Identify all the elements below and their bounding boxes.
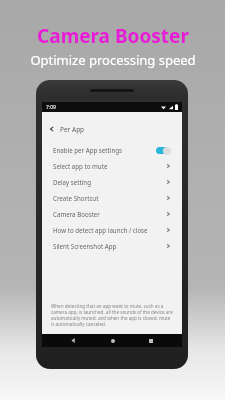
button[interactable]: Back: [67, 334, 80, 347]
staticText: Create Shortcut: [53, 194, 165, 202]
button[interactable]: Recent apps: [144, 334, 157, 347]
button[interactable]: Create Shortcut: [42, 190, 182, 206]
button[interactable]: Home: [106, 334, 119, 347]
staticText: Optimize processing speed: [30, 51, 196, 69]
staticText: Silent Screenshot App: [53, 242, 165, 250]
button[interactable]: Enable per App settings: [42, 142, 182, 158]
staticText: Camera Booster: [37, 23, 189, 49]
button[interactable]: Camera Booster: [42, 206, 182, 222]
button[interactable]: Delay setting: [42, 174, 182, 190]
other: Back: [49, 126, 55, 132]
button[interactable]: Silent Screenshot App: [42, 238, 182, 254]
staticText: Enable per App settings: [53, 146, 156, 154]
staticText: 7:09: [46, 104, 56, 111]
button[interactable]: Select app to mute: [42, 158, 182, 174]
staticText: Per App: [60, 125, 85, 134]
button[interactable]: Back: [42, 122, 182, 136]
staticText: Delay setting: [53, 178, 165, 186]
staticText: Select app to mute: [53, 162, 165, 170]
button[interactable]: How to detect app launch / close: [42, 222, 182, 238]
staticText: When detecting that an app want to mute,…: [51, 303, 173, 327]
staticText: How to detect app launch / close: [53, 226, 165, 234]
staticText: Camera Booster: [53, 210, 165, 218]
